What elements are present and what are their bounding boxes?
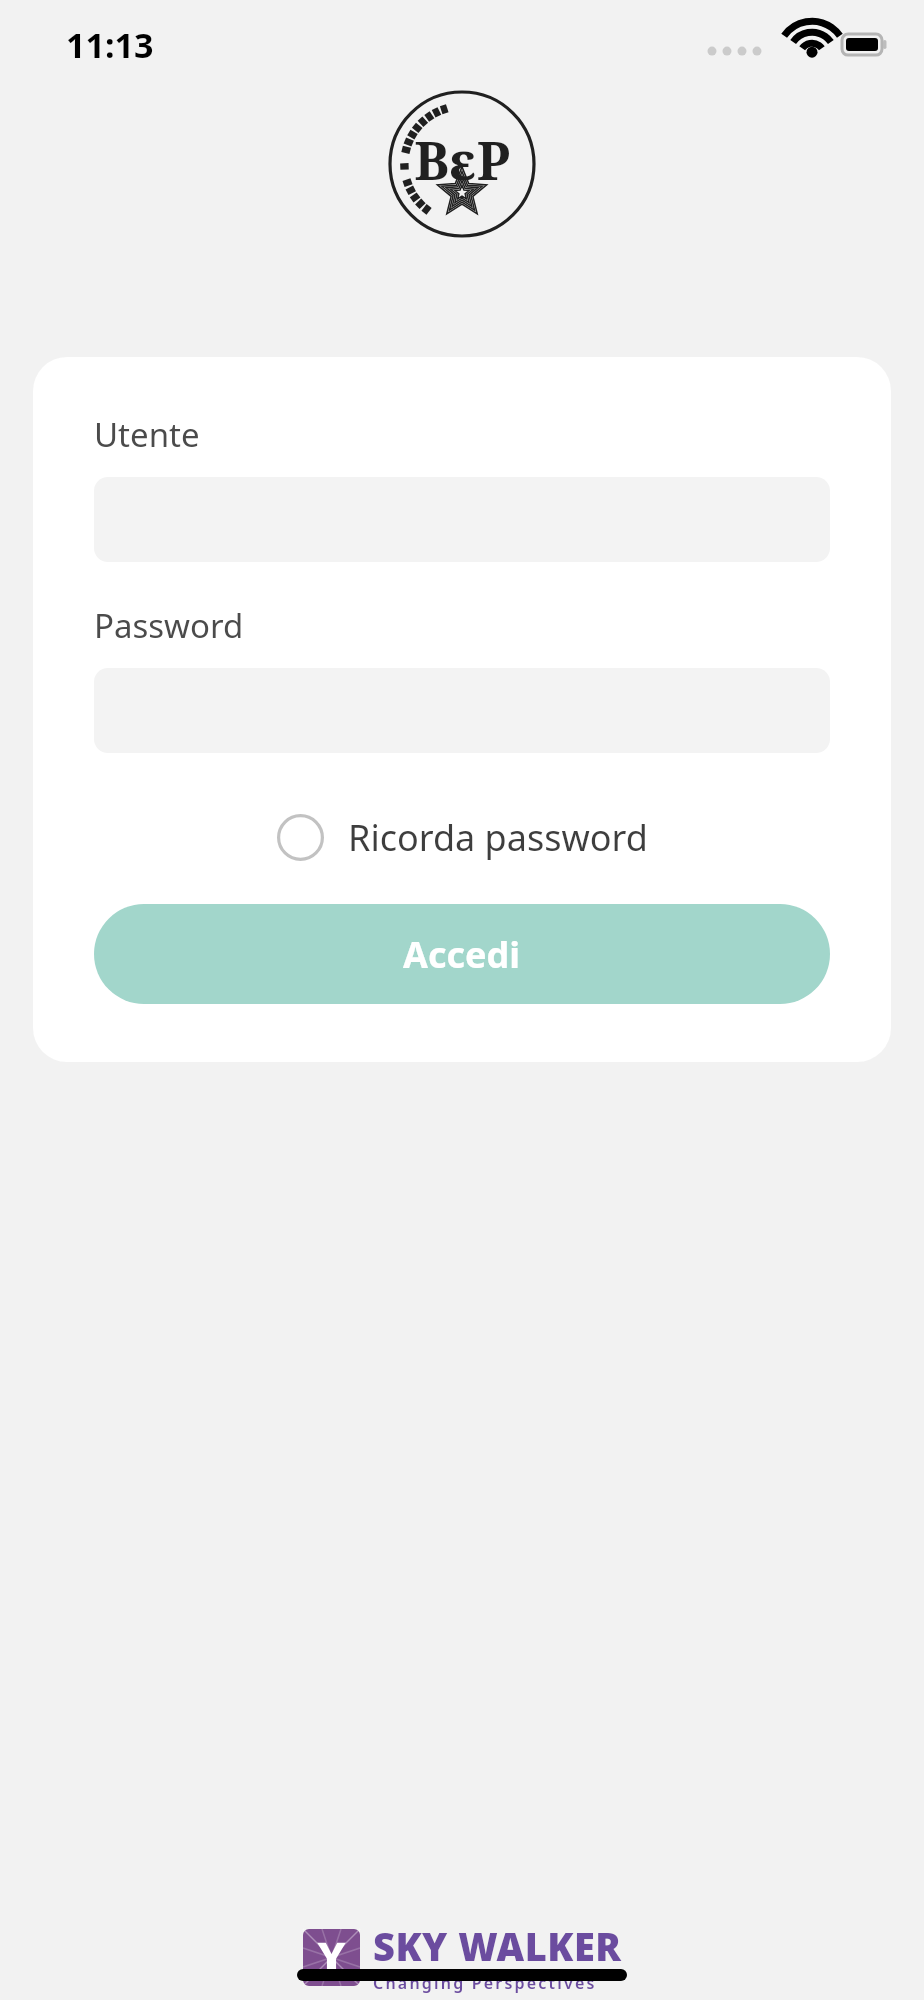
staticText: Changing Perspectives <box>373 1972 597 1994</box>
button[interactable]: Ricorda password <box>273 807 652 868</box>
staticText: Password <box>94 603 244 648</box>
staticText: Ricorda password <box>348 813 648 862</box>
staticText: 11:13 <box>66 22 154 68</box>
button[interactable]: Accedi <box>94 904 830 1004</box>
staticText: BɛP <box>414 124 510 195</box>
staticText: SKY WALKER <box>373 1920 622 1972</box>
staticText: Utente <box>94 412 200 457</box>
button[interactable]: Sky Walker - Changing Perspectives <box>303 1920 622 1994</box>
staticText: Accedi <box>403 930 521 979</box>
